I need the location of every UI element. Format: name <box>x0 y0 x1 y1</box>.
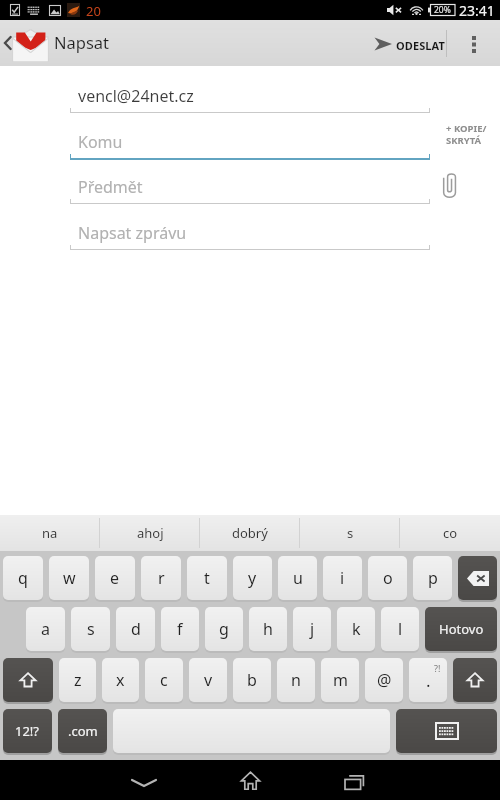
staticText: v <box>204 669 213 691</box>
button[interactable]: k <box>337 607 375 651</box>
staticText: . <box>426 669 431 692</box>
button[interactable]: ahoj <box>100 515 200 551</box>
staticText: ODESLAT <box>396 38 446 53</box>
staticText: y <box>248 567 257 589</box>
button[interactable]: v <box>189 658 227 702</box>
staticText: a <box>41 618 50 640</box>
button[interactable]: h <box>249 607 287 651</box>
button[interactable]: Hotovo <box>425 607 497 651</box>
button[interactable]: na <box>0 515 100 551</box>
button[interactable]: co <box>400 515 500 551</box>
staticText: s <box>87 618 95 640</box>
button[interactable]: e <box>95 556 135 600</box>
button[interactable]: Home <box>202 760 298 800</box>
button[interactable]: c <box>145 658 183 702</box>
staticText: ahoj <box>137 524 164 542</box>
button[interactable]: f <box>161 607 199 651</box>
staticText: dobrý <box>232 524 268 542</box>
staticText: x <box>116 669 125 691</box>
button[interactable]: i <box>323 556 362 600</box>
button[interactable]: l <box>381 607 419 651</box>
button[interactable]: Shift <box>453 658 497 702</box>
button[interactable]: s <box>71 607 110 651</box>
button[interactable]: .com <box>58 709 107 753</box>
staticText: ?! <box>434 662 441 674</box>
staticText: p <box>428 567 438 589</box>
staticText: b <box>247 669 257 691</box>
button[interactable]: o <box>368 556 407 600</box>
staticText: z <box>74 669 82 691</box>
button[interactable]: Space <box>113 709 390 753</box>
button[interactable]: n <box>277 658 315 702</box>
staticText: r <box>158 567 165 589</box>
button[interactable]: d <box>116 607 155 651</box>
button[interactable]: g <box>205 607 243 651</box>
button[interactable]: Attach file <box>434 170 464 200</box>
staticText: i <box>340 567 345 589</box>
button[interactable]: q <box>3 556 43 600</box>
staticText: na <box>42 524 58 542</box>
button[interactable]: j <box>293 607 331 651</box>
button[interactable]: 12!? <box>3 709 52 753</box>
button[interactable]: Hide keyboard <box>96 760 192 800</box>
button[interactable]: z <box>59 658 96 702</box>
staticText: 20 <box>86 2 101 20</box>
button[interactable]: ?! <box>409 658 447 702</box>
button[interactable]: m <box>321 658 359 702</box>
button[interactable]: y <box>233 556 272 600</box>
button[interactable]: p <box>413 556 452 600</box>
button[interactable]: Recent apps <box>308 760 404 800</box>
staticText: h <box>263 618 273 640</box>
staticText: j <box>310 618 315 640</box>
staticText: c <box>160 669 168 691</box>
staticText: k <box>352 618 361 640</box>
staticText: q <box>18 567 28 589</box>
staticText: s <box>347 524 354 542</box>
staticText: Předmět <box>78 176 143 198</box>
staticText: f <box>177 618 183 640</box>
staticText: .com <box>68 722 98 740</box>
button[interactable]: w <box>49 556 89 600</box>
staticText: Hotovo <box>439 620 484 638</box>
staticText: 20% <box>434 4 451 16</box>
staticText: Komu <box>78 131 123 153</box>
staticText: vencl@24net.cz <box>78 85 194 107</box>
staticText: d <box>131 618 141 640</box>
button[interactable]: b <box>233 658 271 702</box>
button[interactable]: Komu <box>70 124 430 158</box>
staticText: @ <box>377 669 392 691</box>
staticText: l <box>398 618 403 640</box>
staticText: g <box>219 618 229 640</box>
button[interactable]: vencl@24net.cz <box>70 78 430 112</box>
button[interactable]: r <box>141 556 181 600</box>
staticText: + KOPIE/ SKRYTÁ <box>446 122 487 147</box>
button[interactable]: Předmět <box>70 169 430 203</box>
staticText: 23:41 <box>459 1 495 20</box>
button[interactable]: @ <box>365 658 403 702</box>
button[interactable]: x <box>102 658 139 702</box>
button[interactable]: Backspace <box>458 556 497 600</box>
button[interactable]: + KOPIE/ SKRYTÁ <box>440 120 498 150</box>
button[interactable]: More options <box>450 20 500 66</box>
staticText: t <box>204 567 210 589</box>
staticText: e <box>110 567 120 589</box>
button[interactable]: Shift <box>3 658 53 702</box>
button[interactable]: Hide keyboard <box>396 709 497 753</box>
button[interactable]: Napsat zprávu <box>70 215 430 249</box>
staticText: w <box>63 567 76 589</box>
button[interactable]: u <box>278 556 317 600</box>
button[interactable]: s <box>300 515 400 551</box>
staticText: u <box>293 567 303 589</box>
staticText: n <box>291 669 301 691</box>
staticText: m <box>333 669 348 691</box>
staticText: Napsat <box>54 31 110 53</box>
button[interactable]: ODESLAT <box>366 20 444 66</box>
button[interactable]: a <box>26 607 65 651</box>
staticText: 12!? <box>15 722 40 740</box>
button[interactable]: dobrý <box>200 515 300 551</box>
button[interactable]: t <box>187 556 227 600</box>
staticText: Napsat zprávu <box>78 222 187 244</box>
staticText: co <box>443 524 458 542</box>
button[interactable]: Navigate up <box>0 20 50 66</box>
